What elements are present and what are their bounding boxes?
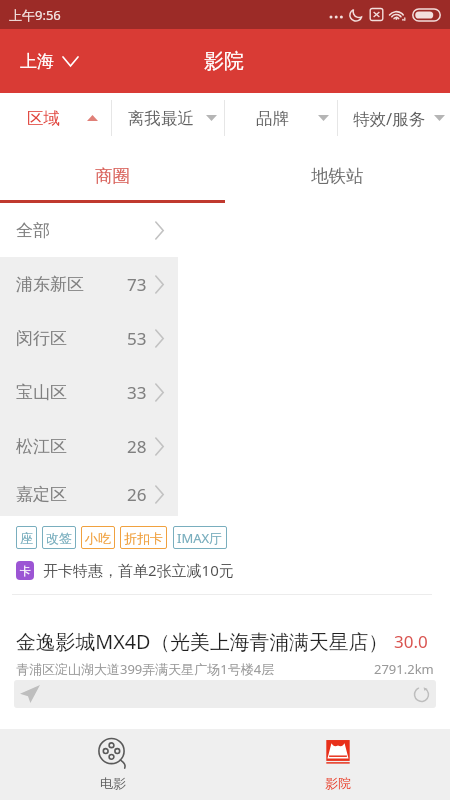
button[interactable]: 电影 [0, 729, 225, 800]
staticText: 宝山区 [16, 382, 67, 403]
staticText: 33 [127, 381, 147, 404]
button[interactable]: 嘉定区 [0, 473, 178, 516]
staticText: 离我最近 [128, 108, 194, 129]
staticText: 地铁站 [311, 165, 364, 187]
button[interactable]: 离我最近 [117, 93, 228, 143]
staticText: 影院 [204, 49, 244, 74]
staticText: 53 [127, 327, 147, 350]
staticText: 28 [127, 435, 147, 458]
staticText: 小吃 [85, 530, 111, 546]
staticText: IMAX厅 [177, 529, 223, 547]
button[interactable]: 区域 [6, 93, 117, 143]
staticText: 卡 [20, 564, 31, 578]
button[interactable]: 松江区 [0, 419, 178, 473]
staticText: 特效/服务 [353, 107, 426, 130]
button[interactable]: 商圈 [0, 146, 225, 206]
staticText: 浦东新区 [16, 274, 84, 295]
staticText: 商圈 [95, 165, 130, 187]
staticText: 座 [20, 530, 33, 546]
staticText: 嘉定区 [16, 484, 67, 505]
staticText: 折扣卡 [124, 530, 163, 546]
staticText: 上午9:56 [9, 6, 61, 24]
button[interactable]: 地铁站 [225, 146, 450, 206]
button[interactable]: 金逸影城MX4D（光美上海青浦满天星店） [0, 595, 450, 680]
staticText: 73 [127, 273, 147, 296]
staticText: 上海 [20, 51, 54, 72]
staticText: 改签 [46, 530, 72, 546]
button[interactable]: 影院 [225, 729, 450, 800]
button[interactable]: 宝山区 [0, 365, 178, 419]
staticText: 26 [127, 483, 147, 506]
staticText: 开卡特惠，首单2张立减10元 [43, 560, 234, 580]
button[interactable]: 浦东新区 [0, 257, 178, 311]
staticText: 闵行区 [16, 328, 67, 349]
staticText: 影院 [325, 775, 351, 791]
staticText: 品牌 [256, 108, 289, 129]
button[interactable]: 全部 [0, 203, 178, 257]
button[interactable]: Locate [20, 685, 40, 703]
staticText: 电影 [100, 775, 126, 791]
staticText: 2791.2km [374, 660, 434, 678]
staticText: 青浦区淀山湖大道399弄满天星广场1号楼4层 [16, 660, 275, 678]
button[interactable]: 上海 [0, 29, 92, 93]
staticText: 30.0 [394, 630, 428, 653]
button[interactable]: 特效/服务 [339, 93, 450, 143]
staticText: 松江区 [16, 436, 67, 457]
button[interactable]: 闵行区 [0, 311, 178, 365]
staticText: 区域 [27, 108, 60, 129]
staticText: 金逸影城MX4D（光美上海青浦满天星店） [16, 628, 389, 655]
button[interactable]: 品牌 [228, 93, 339, 143]
staticText: 全部 [16, 220, 50, 241]
button[interactable]: Refresh [413, 686, 430, 703]
